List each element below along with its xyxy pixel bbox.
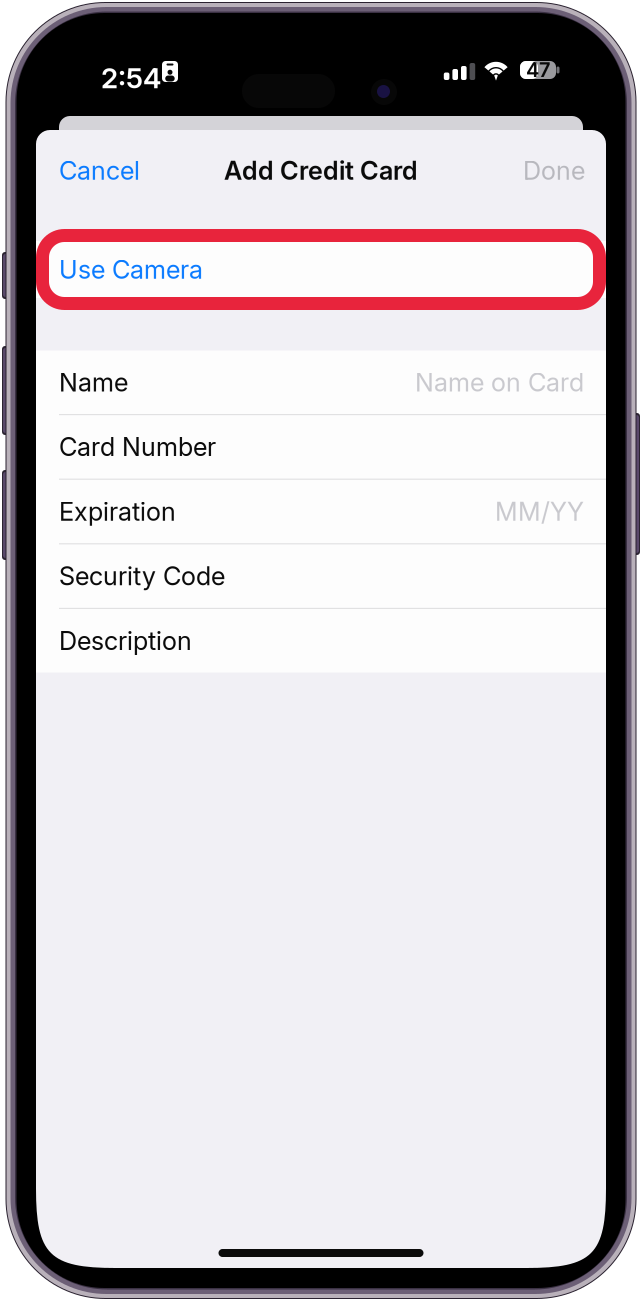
button[interactable]: Use Camera	[36, 241, 606, 298]
staticText: Done	[523, 155, 585, 186]
button[interactable]: Cancel	[59, 143, 140, 198]
staticText: Security Code	[59, 561, 225, 591]
staticText: 47	[526, 58, 550, 82]
button[interactable]: Done	[523, 143, 585, 198]
staticText: 2:54	[101, 61, 161, 95]
staticText: Card Number	[59, 432, 216, 462]
staticText: Description	[59, 625, 192, 656]
staticText: Name on Card	[415, 367, 584, 398]
staticText: Use Camera	[59, 254, 203, 285]
staticText: MM/YY	[495, 496, 584, 527]
staticText: Cancel	[59, 155, 140, 186]
staticText: Name	[59, 367, 128, 398]
staticText: Add Credit Card	[224, 155, 418, 186]
staticText: Expiration	[59, 496, 176, 527]
